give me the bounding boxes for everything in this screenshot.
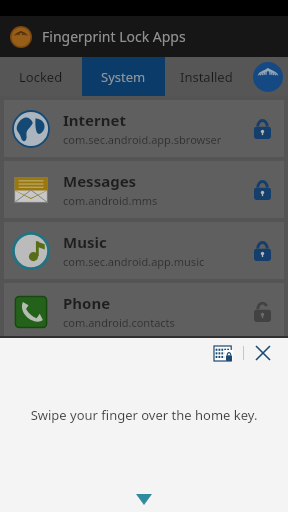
- staticText: com.sec.android.app.music: [63, 254, 205, 269]
- other: App icon: [10, 26, 32, 48]
- button[interactable]: Installed: [165, 57, 248, 96]
- button[interactable]: Locked: [240, 161, 284, 218]
- staticText: com.sec.android.app.sbrowser: [63, 132, 222, 147]
- button[interactable]: Locked: [240, 222, 284, 279]
- button[interactable]: Music: [4, 222, 284, 279]
- button[interactable]: Phone: [4, 283, 284, 340]
- staticText: com.android.mms: [63, 193, 158, 208]
- button[interactable]: Close: [250, 340, 276, 366]
- button[interactable]: Fingerprint: [248, 57, 288, 96]
- button[interactable]: Secure keyboard: [211, 340, 237, 366]
- staticText: com.android.contacts: [63, 315, 175, 330]
- button[interactable]: Locked: [0, 57, 82, 96]
- staticText: Swipe your finger over the home key.: [30, 406, 258, 424]
- button[interactable]: Locked: [240, 100, 284, 157]
- staticText: System: [101, 68, 146, 86]
- staticText: Music: [63, 232, 107, 252]
- button[interactable]: Collapse: [0, 486, 288, 512]
- staticText: Messages: [63, 171, 137, 191]
- button[interactable]: System: [82, 57, 165, 96]
- button[interactable]: Unlocked: [240, 283, 284, 340]
- staticText: Installed: [180, 68, 233, 86]
- staticText: Internet: [63, 110, 126, 130]
- button[interactable]: Internet: [4, 100, 284, 157]
- button[interactable]: Messages: [4, 161, 284, 218]
- staticText: Locked: [19, 68, 63, 86]
- staticText: Fingerprint Lock Apps: [42, 27, 186, 46]
- staticText: Phone: [63, 293, 111, 313]
